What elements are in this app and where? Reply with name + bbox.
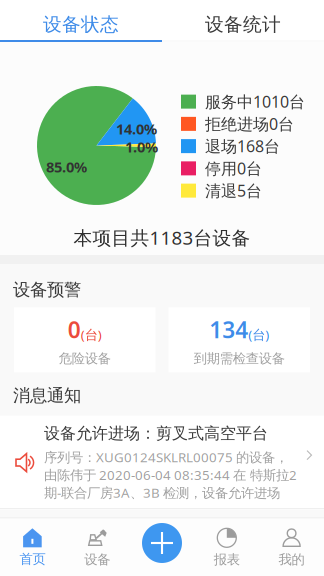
staticText: 0 — [68, 314, 81, 344]
staticText: 134 — [209, 314, 248, 344]
staticText: 1.0% — [125, 137, 158, 156]
staticText: (台) — [248, 326, 269, 343]
staticText: 到期需检查设备 — [194, 350, 285, 367]
staticText: 危险设备 — [59, 350, 111, 367]
staticText: 首页 — [19, 551, 45, 567]
button[interactable]: 134 — [168, 307, 310, 372]
staticText: 设备状态 — [43, 13, 119, 36]
button[interactable]: 报表 — [194, 518, 259, 576]
button[interactable]: 首页 — [0, 519, 65, 575]
button[interactable]: 设备状态 — [0, 0, 162, 42]
staticText: 设备统计 — [205, 13, 281, 36]
button[interactable]: 设备允许进场：剪叉式高空平台 — [0, 416, 324, 509]
staticText: 本项目共1183台设备 — [73, 225, 250, 250]
button[interactable]: 我的 — [259, 518, 324, 576]
button[interactable]: 新增 — [130, 523, 194, 571]
button[interactable]: 0 — [14, 307, 155, 372]
staticText: 消息通知 — [13, 385, 81, 406]
button[interactable]: 设备 — [65, 518, 130, 576]
staticText: 停用0台 — [205, 158, 262, 179]
staticText: 报表 — [214, 551, 240, 568]
staticText: (台) — [81, 326, 102, 343]
staticText: 序列号：XUG0124SKLRL00075 的设备，由陈伟于 2020-06-0… — [44, 448, 297, 501]
staticText: 14.0% — [116, 119, 157, 138]
staticText: 退场168台 — [205, 135, 280, 157]
staticText: 拒绝进场0台 — [205, 113, 294, 134]
staticText: 设备预警 — [13, 279, 81, 300]
staticText: 我的 — [279, 551, 305, 568]
staticText: 85.0% — [46, 157, 87, 176]
staticText: 清退5台 — [205, 180, 262, 201]
staticText: 服务中1010台 — [205, 91, 305, 112]
staticText: 设备 — [84, 551, 110, 568]
button[interactable]: 设备统计 — [162, 0, 324, 42]
staticText: 设备允许进场：剪叉式高空平台 — [44, 424, 268, 443]
